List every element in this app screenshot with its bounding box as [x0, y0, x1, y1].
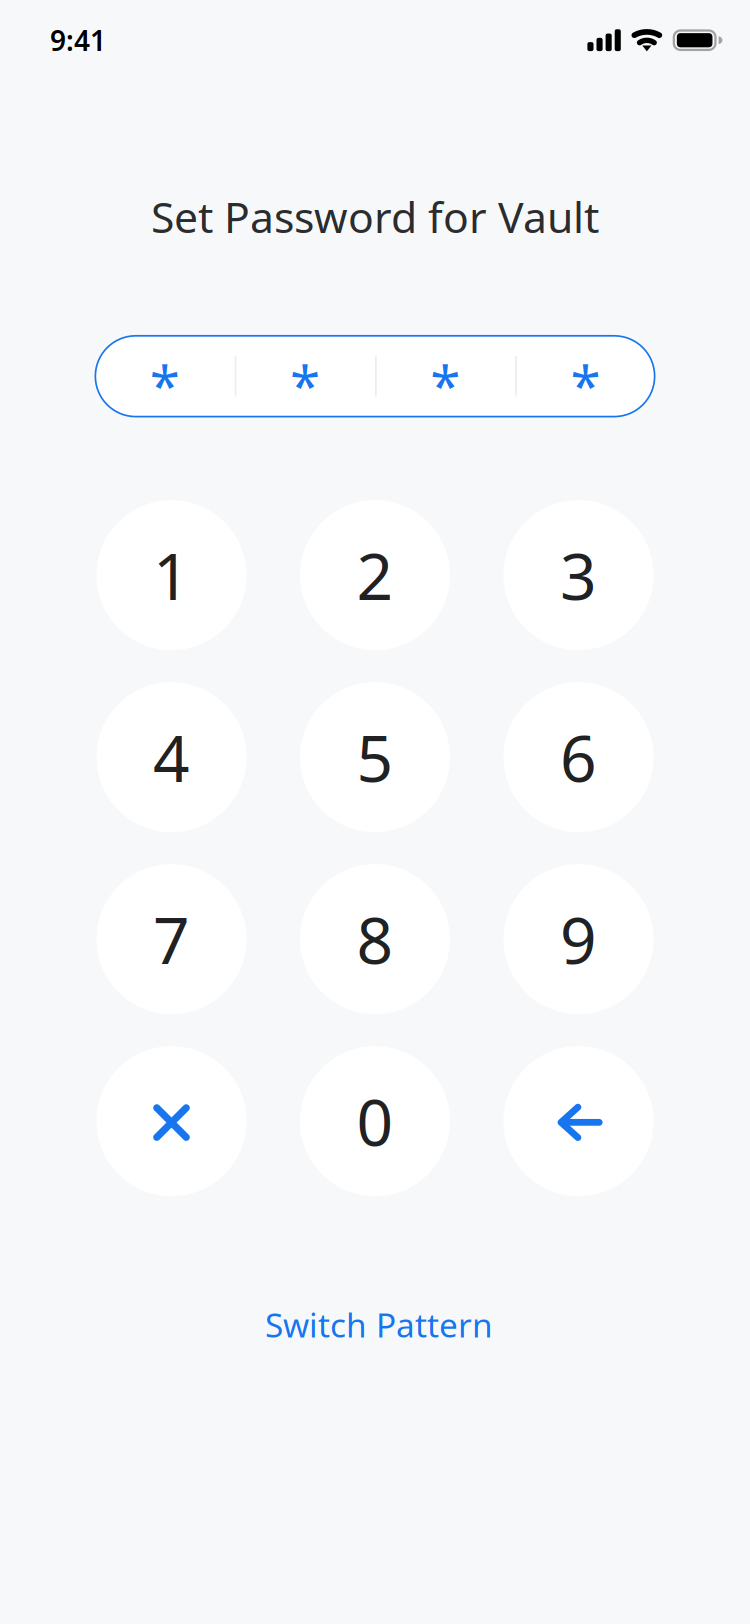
button[interactable]: 5 [300, 682, 450, 832]
staticText: Set Password for Vault [151, 188, 599, 245]
button[interactable]: 7 [96, 864, 246, 1014]
button[interactable]: Password [94, 335, 655, 417]
button[interactable]: Clear [96, 1046, 246, 1196]
staticText: * [150, 349, 180, 421]
button[interactable]: 4 [96, 682, 246, 832]
button[interactable]: 6 [503, 682, 653, 832]
staticText: 6 [560, 715, 597, 800]
button[interactable]: 0 [300, 1046, 450, 1196]
staticText: 3 [560, 533, 597, 618]
button[interactable]: 1 [96, 500, 246, 650]
staticText: * [430, 349, 460, 421]
staticText: * [290, 349, 320, 421]
staticText: 1 [153, 533, 190, 618]
staticText: 2 [356, 533, 393, 618]
button[interactable]: Delete [503, 1046, 653, 1196]
button[interactable]: 9 [503, 864, 653, 1014]
button[interactable]: 8 [300, 864, 450, 1014]
staticText: 5 [356, 715, 393, 800]
staticText: 7 [153, 897, 190, 982]
staticText: 8 [356, 897, 393, 982]
staticText: 0 [356, 1079, 393, 1164]
staticText: 9:41 [50, 22, 106, 59]
button[interactable]: 3 [503, 500, 653, 650]
staticText: * [570, 349, 600, 421]
staticText: 9 [560, 897, 597, 982]
staticText: 4 [153, 715, 190, 800]
staticText: Switch Pattern [265, 1302, 493, 1347]
button[interactable]: Switch Pattern [247, 1294, 511, 1355]
button[interactable]: 2 [300, 500, 450, 650]
